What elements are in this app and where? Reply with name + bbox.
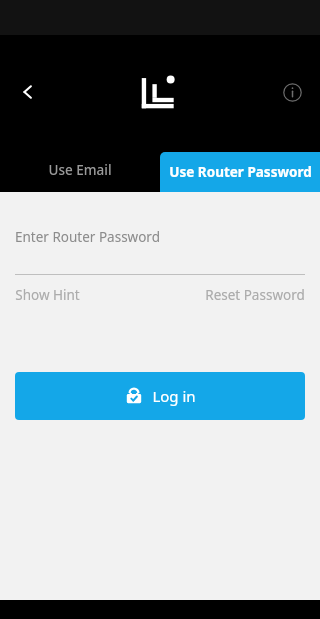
button[interactable]: Reset Password	[205, 286, 305, 304]
button[interactable]: Enter Router Password	[15, 228, 305, 274]
staticText: Log in	[152, 386, 196, 406]
button[interactable]: Information	[270, 70, 314, 114]
button[interactable]: Use Router Password	[160, 152, 320, 192]
button[interactable]: Log in	[15, 372, 305, 420]
staticText: Use Router Password	[169, 163, 312, 181]
staticText: Show Hint	[15, 286, 80, 304]
staticText: Use Email	[48, 161, 112, 179]
staticText: Enter Router Password	[15, 228, 160, 246]
button[interactable]: Back	[6, 70, 50, 114]
button[interactable]: Show Hint	[15, 286, 80, 304]
button[interactable]: Use Email	[0, 148, 160, 192]
staticText: Reset Password	[205, 286, 305, 304]
